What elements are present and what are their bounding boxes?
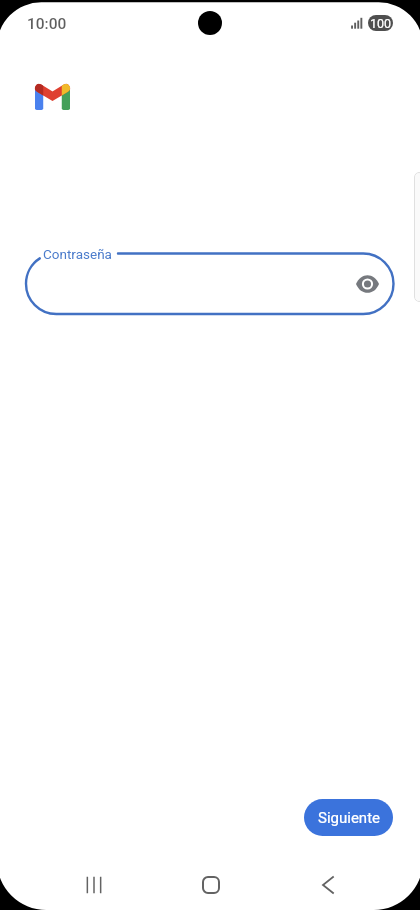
staticText: Siguiente (318, 809, 380, 827)
staticText: 100 (370, 16, 392, 31)
button[interactable]: Siguiente (304, 799, 393, 836)
button[interactable]: Recientes (73, 864, 115, 906)
staticText: Contraseña (43, 246, 112, 262)
staticText: 10:00 (27, 15, 67, 33)
button[interactable]: Mostrar contraseña (347, 264, 387, 304)
button[interactable]: Inicio (190, 864, 232, 906)
button[interactable]: Atrás (307, 864, 349, 906)
